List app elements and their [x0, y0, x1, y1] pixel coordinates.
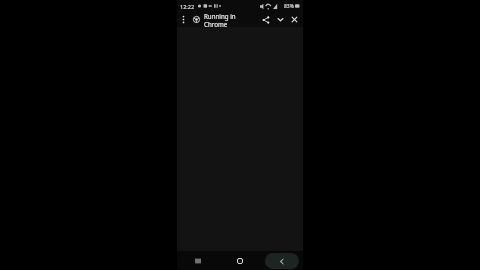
staticText: 83% — [284, 3, 294, 10]
staticText: 12:22 — [180, 3, 195, 10]
button[interactable]: Home — [219, 251, 261, 270]
button[interactable]: Back — [261, 251, 303, 270]
button[interactable]: Close — [287, 12, 301, 27]
button[interactable]: Share — [259, 12, 273, 27]
staticText: Running in Chrome — [204, 12, 259, 27]
button[interactable]: Recent apps — [177, 251, 219, 270]
button[interactable]: More options — [177, 12, 190, 27]
button[interactable]: Minimize — [273, 12, 287, 27]
